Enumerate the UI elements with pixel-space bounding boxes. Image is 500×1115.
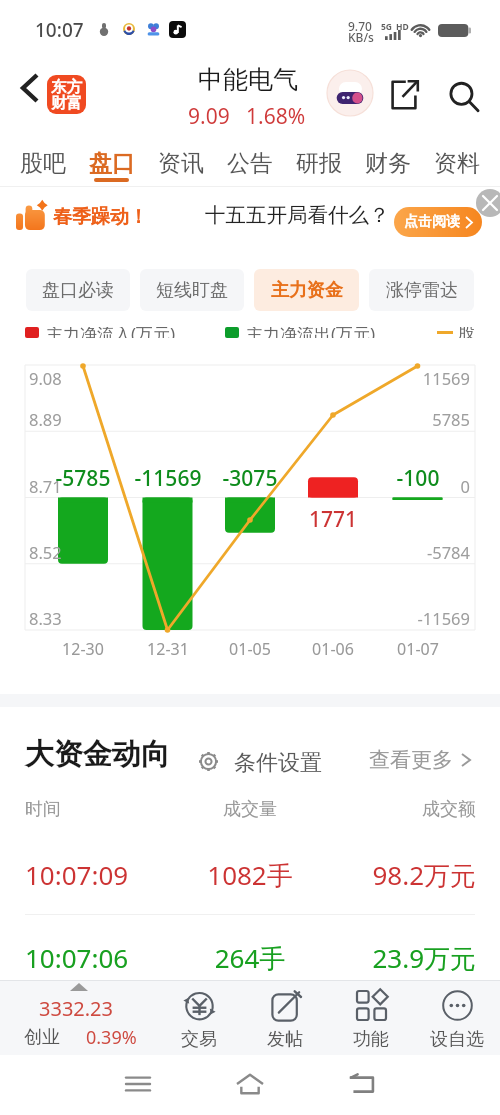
staticText: 短线盯盘 [156,279,228,302]
staticText: 成交量 [180,798,320,821]
button[interactable]: Back [7,65,53,111]
staticText: 东方 财富 [51,77,82,112]
staticText: 0 [380,475,470,497]
staticText: 股吧 [20,149,66,178]
staticText: 10:07:06 [25,940,129,975]
button[interactable]: Close [476,189,500,217]
staticText: -11569 [123,464,213,493]
staticText: 盘口必读 [42,279,114,302]
staticText: 创业 [24,1026,60,1049]
staticText: 8.33 [29,607,62,629]
staticText: 公告 [227,149,273,178]
button[interactable]: 交易 [156,980,242,1055]
staticText: 8.71 [29,475,62,497]
button[interactable]: 发帖 [242,980,328,1055]
staticText: 功能 [353,1028,389,1051]
staticText: HD [396,21,409,33]
staticText: 5G [381,21,393,33]
staticText: 8.89 [29,408,62,430]
staticText: 涨停雷达 [386,279,458,302]
staticText: 大资金动向 [25,736,170,773]
staticText: 1771 [288,505,378,534]
staticText: 股 [458,327,475,338]
staticText: 财务 [365,149,411,178]
staticText: 01-07 [373,638,463,660]
button[interactable]: Recents [115,1061,161,1107]
staticText: 十五五开局看什么？ [205,202,390,228]
button[interactable]: 10:07:06 [0,932,500,976]
staticText: -5784 [380,541,470,563]
staticText: 春季躁动！ [53,205,148,229]
button[interactable]: East Money [47,75,86,114]
staticText: 主力资金 [271,279,343,302]
button[interactable]: 10:07:09 [0,849,500,893]
staticText: 1082手 [180,857,320,893]
button[interactable]: 点击阅读 [394,207,482,237]
button[interactable]: 涨停雷达 [369,269,474,311]
staticText: 主力净流出(万元) [246,327,376,338]
staticText: 9.09 [188,102,230,131]
button[interactable]: 盘口必读 [26,269,130,311]
button[interactable]: 股吧 [9,128,77,187]
staticText: 1.68% [246,102,306,131]
staticText: 9.08 [29,367,62,389]
staticText: 盘口 [89,149,135,178]
staticText: 查看更多 [369,747,453,773]
button[interactable]: Search [440,73,488,121]
staticText: 10:07 [35,17,84,43]
staticText: 10:07:09 [25,857,129,892]
button[interactable]: 条件设置 [192,742,337,778]
button[interactable]: Share [382,73,426,117]
button[interactable]: AI assistant [327,70,373,116]
staticText: 时间 [25,798,61,821]
staticText: -3075 [205,464,295,493]
button[interactable]: 资料 [422,128,491,187]
staticText: 交易 [181,1028,217,1051]
staticText: 5785 [380,408,470,430]
staticText: 01-05 [205,638,295,660]
button[interactable]: 3332.23 [0,980,156,1055]
staticText: 01-06 [288,638,378,660]
staticText: 264手 [180,940,320,976]
staticText: 12-30 [38,638,128,660]
button[interactable]: 财务 [353,128,422,187]
button[interactable]: Back [339,1061,385,1107]
button[interactable]: 盘口 [77,128,146,187]
button[interactable]: 时间 [0,790,500,834]
staticText: 发帖 [267,1028,303,1051]
staticText: 9.70 KB/s [348,18,374,45]
button[interactable]: 短线盯盘 [140,269,244,311]
staticText: -5785 [38,464,128,493]
button[interactable]: 设自选 [414,980,500,1055]
staticText: 资料 [434,149,480,178]
button[interactable]: Home [227,1061,273,1107]
staticText: 点击阅读 [404,213,460,231]
staticText: 12-31 [123,638,213,660]
staticText: -11569 [380,607,470,629]
staticText: 设自选 [430,1028,484,1051]
staticText: 主力净流入(万元) [46,327,176,338]
staticText: 23.9万元 [330,940,476,976]
button[interactable]: 主力资金 [254,269,359,311]
button[interactable]: 资讯 [146,128,215,187]
staticText: 研报 [296,149,342,178]
staticText: 98.2万元 [330,857,476,893]
staticText: 资讯 [158,149,204,178]
button[interactable]: 春季躁动！ [0,188,500,244]
button[interactable]: 公告 [215,128,284,187]
staticText: 0.39% [86,1025,137,1050]
staticText: 中能电气 [198,64,298,95]
button[interactable]: 功能 [328,980,414,1055]
staticText: -100 [373,464,463,493]
staticText: 条件设置 [234,749,322,777]
staticText: 成交额 [330,798,476,821]
staticText: 3332.23 [0,995,152,1022]
button[interactable]: 研报 [284,128,353,187]
staticText: 11569 [380,367,470,389]
staticText: 8.52 [29,541,62,563]
button[interactable]: 查看更多 [369,742,471,778]
